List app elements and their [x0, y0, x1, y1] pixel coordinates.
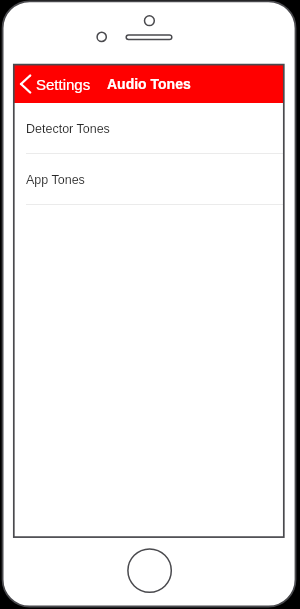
staticText: Detector Tones [26, 122, 110, 136]
staticText: Settings [36, 76, 91, 93]
button[interactable]: Back [19, 74, 91, 94]
button[interactable]: App Tones [14, 154, 284, 205]
button[interactable]: Detector Tones [14, 103, 284, 154]
staticText: Audio Tones [107, 76, 191, 92]
staticText: App Tones [26, 173, 85, 187]
other: Back [19, 74, 31, 94]
